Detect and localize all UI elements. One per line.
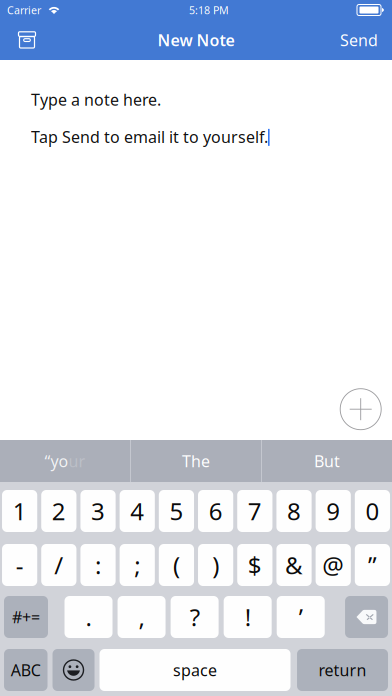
button[interactable]: 6 [198,490,233,532]
staticText: “yo [44,450,68,472]
button[interactable]: space [99,649,290,691]
button[interactable]: , [118,596,166,638]
staticText: ! [245,601,251,633]
staticText: ” [368,549,377,581]
button[interactable]: Archive [5,20,49,60]
staticText: Tap Send to email it to yourself. [31,126,268,147]
button[interactable]: “yo [0,440,130,482]
button[interactable]: 4 [120,490,155,532]
staticText: But [314,450,340,472]
staticText: 3 [91,495,105,527]
staticText: 6 [209,495,223,527]
button[interactable]: - [2,544,37,586]
button[interactable]: ! [224,596,272,638]
staticText: $ [248,549,262,581]
button[interactable]: : [80,544,116,586]
button[interactable]: 5 [159,490,194,532]
staticText: 5:18 PM [189,3,229,17]
staticText: 5 [169,495,183,527]
button[interactable]: @ [316,544,351,586]
button[interactable]: Add [339,387,383,431]
button[interactable]: 9 [316,490,351,532]
staticText: 0 [365,495,379,527]
button[interactable]: #+= [4,596,48,638]
staticText: , [139,601,145,633]
staticText: ? [190,601,200,633]
staticText: 4 [130,495,144,527]
button[interactable]: ) [198,544,233,586]
staticText: @ [322,549,344,581]
button[interactable]: ; [120,544,155,586]
button[interactable]: ? [171,596,219,638]
staticText: The [182,450,210,472]
button[interactable]: 1 [2,490,37,532]
button[interactable]: 7 [237,490,272,532]
staticText: & [285,549,303,581]
staticText: return [318,659,366,681]
staticText: space [173,659,217,681]
staticText: Type a note here. [31,89,161,110]
button[interactable]: Send [331,20,387,60]
staticText: 7 [248,495,262,527]
staticText: . [85,601,91,633]
staticText: / [54,549,63,581]
staticText: ; [134,549,140,581]
staticText: 2 [52,495,66,527]
button[interactable]: & [276,544,312,586]
staticText: ( [173,549,180,581]
staticText: Carrier [7,3,41,17]
staticText: 9 [326,495,340,527]
button[interactable]: ABC [4,649,47,691]
button[interactable]: . [64,596,112,638]
staticText: ABC [11,659,41,681]
button[interactable]: The [131,440,261,482]
button[interactable]: ( [159,544,194,586]
button[interactable]: 2 [41,490,76,532]
button[interactable]: But [262,440,392,482]
staticText: 1 [13,495,27,527]
button[interactable]: Emoji [52,649,94,691]
button[interactable]: / [41,544,76,586]
staticText: 8 [287,495,301,527]
staticText: New Note [157,29,234,51]
button[interactable]: $ [237,544,272,586]
staticText: Send [340,29,378,51]
button[interactable]: Delete [345,596,388,638]
button[interactable]: 0 [355,490,390,532]
button[interactable]: 8 [276,490,312,532]
button[interactable]: ” [355,544,390,586]
staticText: #+= [12,606,40,628]
button[interactable]: ’ [277,596,325,638]
staticText: ur [68,450,85,472]
button[interactable]: return [297,649,388,691]
button[interactable]: 3 [80,490,116,532]
staticText: ’ [299,601,303,633]
staticText: ) [212,549,219,581]
staticText: : [95,549,101,581]
staticText: - [16,549,24,581]
